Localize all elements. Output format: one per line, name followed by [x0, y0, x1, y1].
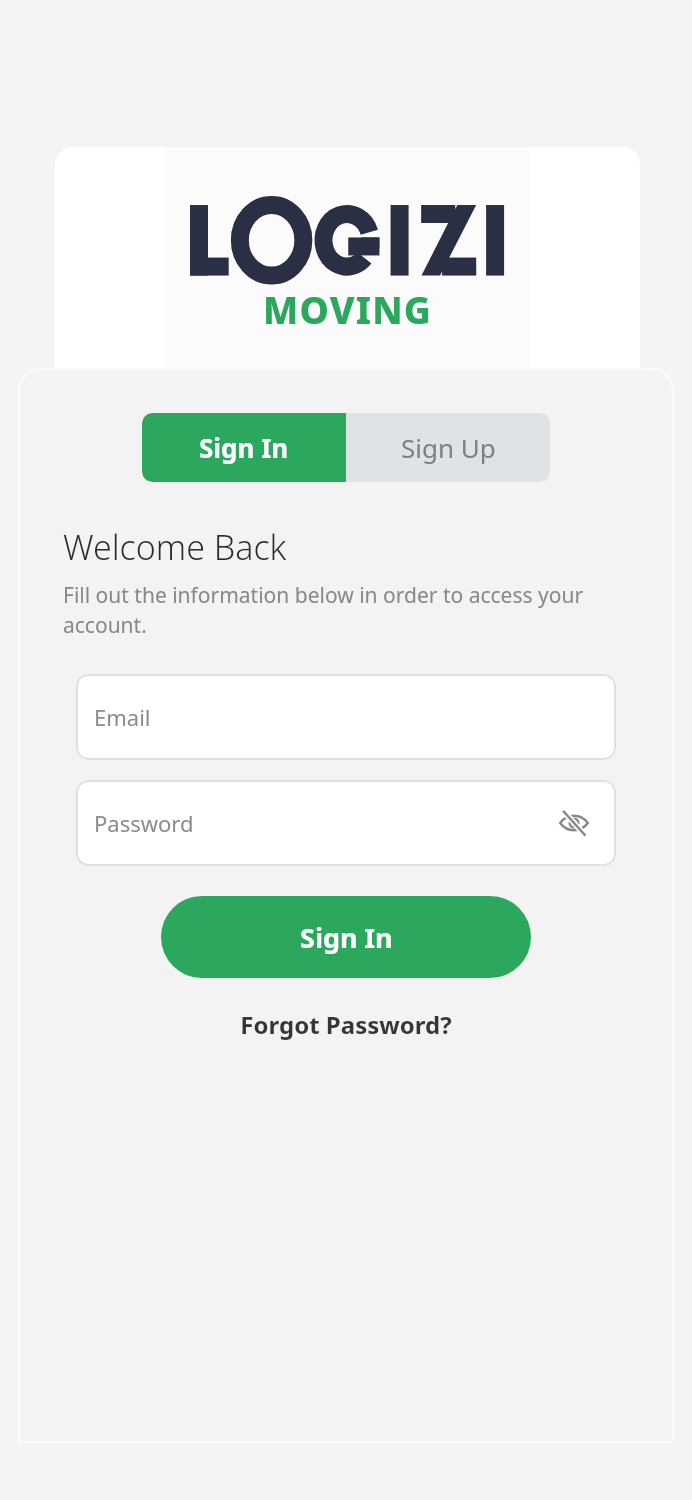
staticText: Forgot Password?: [240, 1008, 452, 1041]
button[interactable]: Forgot Password?: [63, 1008, 629, 1041]
staticText: Sign Up: [401, 430, 496, 465]
button[interactable]: Show password: [550, 799, 598, 847]
staticText: Sign In: [199, 430, 289, 465]
staticText: Password: [94, 808, 194, 838]
button[interactable]: Email: [76, 674, 616, 760]
button[interactable]: Password: [76, 780, 616, 866]
staticText: MOVING: [263, 284, 433, 334]
staticText: Welcome Back: [63, 524, 287, 570]
staticText: Fill out the information below in order …: [63, 581, 629, 639]
button[interactable]: Sign Up: [346, 413, 550, 482]
staticText: Email: [94, 702, 151, 732]
staticText: Sign In: [300, 919, 393, 956]
button[interactable]: Sign In: [142, 413, 346, 482]
button[interactable]: Sign In: [161, 896, 531, 978]
